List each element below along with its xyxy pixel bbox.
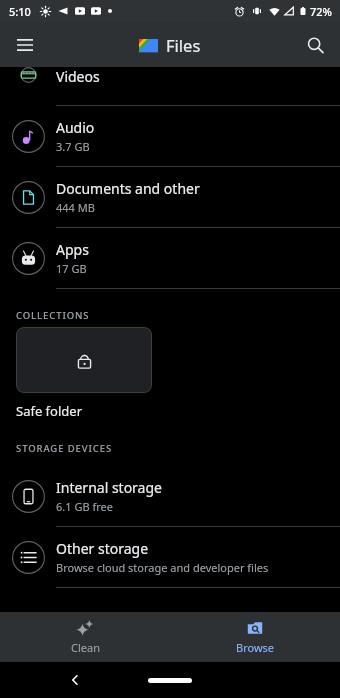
button[interactable]: Internal storage xyxy=(0,466,340,526)
button[interactable]: Other storage xyxy=(0,527,340,587)
staticText: 6.1 GB free xyxy=(56,499,113,514)
staticText: Safe folder xyxy=(16,402,83,420)
button[interactable]: Clean xyxy=(0,612,170,662)
button[interactable]: Back xyxy=(62,667,88,693)
staticText: 5:10 xyxy=(9,4,31,19)
staticText: COLLECTIONS xyxy=(16,309,90,322)
button[interactable]: Documents and other xyxy=(0,167,340,227)
staticText: Browse cloud storage and developer files xyxy=(56,560,269,575)
staticText: 17 GB xyxy=(56,261,87,276)
button[interactable]: Safe folder xyxy=(16,327,152,393)
staticText: 3.7 GB xyxy=(56,139,90,154)
button[interactable]: Apps xyxy=(0,228,340,288)
button[interactable]: Search xyxy=(295,25,335,65)
staticText: 444 MB xyxy=(56,200,95,215)
staticText: Documents and other xyxy=(56,179,200,198)
staticText: Files xyxy=(166,34,201,56)
staticText: Browse xyxy=(236,640,275,655)
staticText: Audio xyxy=(56,118,95,137)
staticText: STORAGE DEVICES xyxy=(16,442,113,455)
staticText: Clean xyxy=(71,640,100,655)
staticText: 72% xyxy=(310,4,332,19)
button[interactable]: Open navigation menu xyxy=(5,25,45,65)
button[interactable]: Browse xyxy=(170,612,340,662)
staticText: Internal storage xyxy=(56,478,162,497)
button[interactable]: Videos xyxy=(0,67,340,105)
staticText: Other storage xyxy=(56,539,149,558)
button[interactable]: Audio xyxy=(0,106,340,166)
staticText: Apps xyxy=(56,240,89,259)
staticText: Videos xyxy=(56,67,100,83)
